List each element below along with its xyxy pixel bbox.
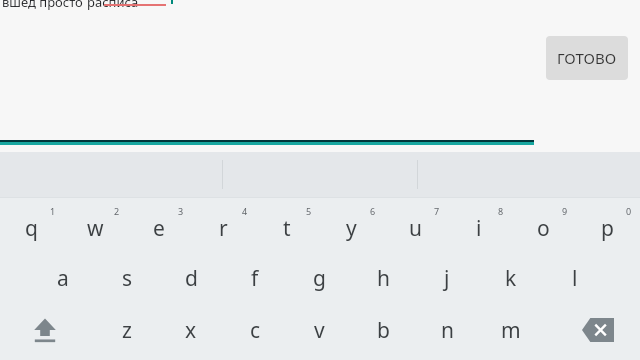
staticText: l	[572, 264, 578, 293]
staticText: 9	[562, 205, 568, 217]
button[interactable]: w	[63, 198, 127, 252]
staticText: u	[409, 214, 422, 243]
staticText: t	[283, 214, 291, 243]
button[interactable]: n	[415, 304, 479, 356]
button[interactable]: r	[191, 198, 255, 252]
button[interactable]: d	[159, 252, 223, 304]
staticText: f	[251, 264, 259, 293]
staticText: z	[122, 316, 132, 345]
button[interactable]: o	[511, 198, 575, 252]
button[interactable]: p	[575, 198, 639, 252]
staticText: g	[313, 264, 326, 293]
staticText: c	[250, 316, 261, 345]
staticText: n	[441, 316, 454, 345]
staticText: e	[153, 214, 165, 243]
staticText: 2	[114, 205, 120, 217]
staticText: 8	[498, 205, 504, 217]
staticText: y	[346, 214, 357, 243]
staticText: h	[377, 264, 390, 293]
staticText: 7	[434, 205, 440, 217]
button[interactable]: z	[95, 304, 159, 356]
button[interactable]: j	[415, 252, 479, 304]
button[interactable]: a	[31, 252, 95, 304]
button[interactable]: m	[479, 304, 543, 356]
button[interactable]: y	[319, 198, 383, 252]
button[interactable]: h	[351, 252, 415, 304]
button[interactable]: k	[479, 252, 543, 304]
button[interactable]: l	[543, 252, 607, 304]
button[interactable]: ГОТОВО	[546, 36, 628, 80]
staticText: вшед просто	[2, 0, 83, 11]
staticText: i	[476, 214, 482, 243]
staticText: 4	[242, 205, 248, 217]
button[interactable]: Backspace	[566, 304, 630, 356]
button[interactable]: g	[287, 252, 351, 304]
button[interactable]: c	[223, 304, 287, 356]
staticText: q	[25, 214, 38, 243]
staticText: o	[537, 214, 550, 243]
staticText: k	[505, 264, 517, 293]
button[interactable]: q	[0, 198, 63, 252]
button[interactable]: e	[127, 198, 191, 252]
button[interactable]: s	[95, 252, 159, 304]
staticText: 3	[178, 205, 184, 217]
staticText: 5	[306, 205, 312, 217]
staticText: a	[57, 264, 69, 293]
staticText: s	[122, 264, 133, 293]
staticText: ГОТОВО	[557, 48, 617, 68]
staticText: w	[87, 214, 104, 243]
staticText: m	[501, 316, 521, 345]
button[interactable]: x	[159, 304, 223, 356]
staticText: расписа	[87, 0, 139, 11]
staticText: v	[314, 316, 325, 345]
staticText: 6	[370, 205, 376, 217]
staticText: r	[219, 214, 228, 243]
staticText: x	[185, 316, 197, 345]
button[interactable]: t	[255, 198, 319, 252]
button[interactable]: b	[351, 304, 415, 356]
button[interactable]: u	[383, 198, 447, 252]
staticText: b	[377, 316, 390, 345]
staticText: 0	[626, 205, 632, 217]
staticText: d	[185, 264, 198, 293]
staticText: p	[601, 214, 614, 243]
button[interactable]: i	[447, 198, 511, 252]
staticText: j	[444, 264, 450, 293]
button[interactable]: Shift	[13, 304, 77, 356]
button[interactable]: f	[223, 252, 287, 304]
button[interactable]: v	[287, 304, 351, 356]
staticText: 1	[50, 205, 56, 217]
